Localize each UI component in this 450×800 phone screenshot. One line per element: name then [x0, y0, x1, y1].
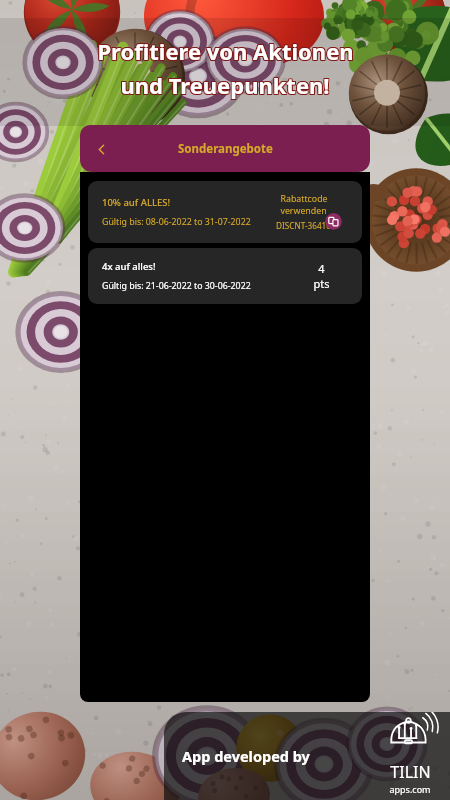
staticText: und Treuepunkten! — [121, 70, 331, 100]
staticText: und Treuepunkten! — [119, 71, 329, 101]
staticText: verwenden — [280, 205, 327, 217]
staticText: Gültig bis: 08-06-2022 to 31-07-2022 — [102, 216, 251, 228]
staticText: App developed by — [182, 746, 380, 766]
staticText: und Treuepunkten! — [119, 69, 329, 99]
staticText: und Treuepunkten! — [120, 70, 330, 100]
staticText: und Treuepunkten! — [121, 69, 331, 99]
button[interactable]: Rabattcode kopieren — [325, 213, 342, 230]
staticText: TILIN — [390, 761, 431, 783]
button[interactable]: 10% auf ALLES! — [88, 181, 362, 243]
staticText: Gültig bis: 21-06-2022 to 30-06-2022 — [102, 280, 251, 292]
staticText: Profitiere von Aktionen — [98, 37, 355, 67]
staticText: und Treuepunkten! — [120, 69, 330, 99]
staticText: 4 — [318, 261, 325, 276]
staticText: und Treuepunkten! — [121, 71, 331, 101]
staticText: DISCNT-36410 — [276, 220, 331, 231]
staticText: Profitiere von Aktionen — [96, 36, 353, 66]
staticText: Rabattcode — [280, 193, 328, 205]
staticText: und Treuepunkten! — [120, 71, 330, 101]
staticText: Sonderangebote — [178, 141, 273, 157]
staticText: apps.com — [389, 783, 431, 795]
staticText: Profitiere von Aktionen — [98, 35, 355, 65]
staticText: Profitiere von Aktionen — [96, 37, 353, 67]
staticText: Profitiere von Aktionen — [96, 35, 353, 65]
staticText: 4x auf alles! — [102, 260, 156, 273]
staticText: und Treuepunkten! — [119, 70, 329, 100]
button[interactable]: Zurück — [88, 136, 114, 162]
button[interactable]: 4x auf alles! — [88, 248, 362, 304]
staticText: 10% auf ALLES! — [102, 196, 171, 209]
staticText: Profitiere von Aktionen — [97, 37, 354, 67]
staticText: Profitiere von Aktionen — [97, 36, 354, 66]
staticText: Profitiere von Aktionen — [98, 36, 355, 66]
staticText: Profitiere von Aktionen — [97, 35, 354, 65]
staticText: pts — [313, 276, 330, 291]
button[interactable]: TILIN apps.com — [380, 717, 440, 795]
